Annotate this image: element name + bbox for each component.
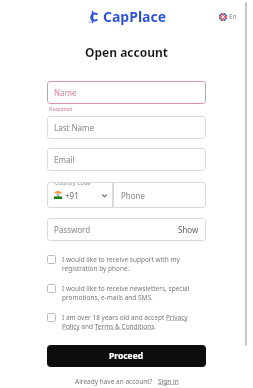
staticText: I am over 18 years old and accept Privac… bbox=[62, 313, 206, 331]
staticText: Show bbox=[178, 224, 199, 235]
staticText: Phone bbox=[121, 190, 146, 201]
staticText: I would like to receive support with my … bbox=[62, 255, 206, 273]
button[interactable]: Email bbox=[47, 148, 206, 171]
staticText: I would like to receive newsletters, spe… bbox=[62, 284, 206, 302]
button[interactable]: +91 bbox=[47, 182, 113, 208]
button[interactable]: Phone bbox=[113, 182, 206, 208]
staticText: Open account bbox=[85, 44, 169, 60]
button[interactable]: Name bbox=[47, 81, 206, 104]
staticText: En bbox=[229, 12, 237, 21]
button[interactable]: I would like to receive support with my … bbox=[47, 254, 206, 274]
staticText: Required bbox=[49, 105, 73, 112]
staticText: Password bbox=[54, 224, 91, 235]
staticText: Already have an account? bbox=[75, 377, 153, 386]
staticText: CapPlace bbox=[103, 7, 167, 26]
button[interactable]: Last Name bbox=[47, 116, 206, 139]
staticText: Last Name bbox=[54, 122, 95, 133]
staticText: Sign in bbox=[158, 377, 179, 386]
button[interactable]: Language English bbox=[219, 12, 237, 21]
staticText: Proceed bbox=[109, 350, 144, 362]
staticText: Country Code bbox=[55, 182, 91, 186]
button[interactable]: I would like to receive newsletters, spe… bbox=[47, 283, 206, 303]
staticText: Name bbox=[54, 87, 77, 98]
button[interactable]: Password bbox=[47, 218, 206, 241]
button[interactable]: Proceed bbox=[47, 345, 206, 367]
staticText: +91 bbox=[65, 190, 79, 201]
staticText: Email bbox=[54, 154, 75, 165]
button[interactable]: Sign in bbox=[158, 377, 179, 386]
button[interactable]: I am over 18 years old and accept Privac… bbox=[47, 312, 206, 332]
